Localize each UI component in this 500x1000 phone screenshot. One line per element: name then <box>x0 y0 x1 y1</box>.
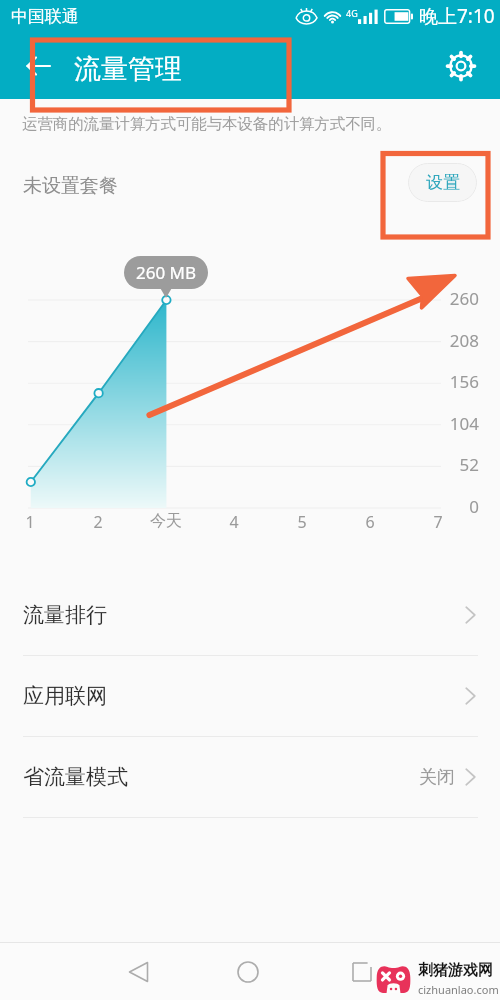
staticText: 6 <box>350 511 390 533</box>
staticText: 4 <box>214 511 254 533</box>
staticText: 260 MB <box>136 261 197 284</box>
button[interactable]: 应用联网 <box>0 656 500 736</box>
staticText: 未设置套餐 <box>23 174 118 198</box>
staticText: 应用联网 <box>23 683 107 709</box>
staticText: cizhuanlao.com <box>418 982 499 997</box>
button[interactable]: 省流量模式 <box>0 737 500 817</box>
button[interactable]: 流量排行 <box>0 575 500 655</box>
staticText: 今天 <box>146 511 186 531</box>
staticText: 中国联通 <box>11 6 79 27</box>
button[interactable]: Home <box>228 952 268 992</box>
staticText: 156 <box>429 370 479 393</box>
staticText: 208 <box>429 329 479 352</box>
staticText: 7 <box>418 511 458 533</box>
staticText: 2 <box>78 511 118 533</box>
button[interactable]: Back <box>118 952 158 992</box>
staticText: 关闭 <box>419 766 455 789</box>
staticText: 流量排行 <box>23 602 107 628</box>
staticText: 流量管理 <box>74 52 182 86</box>
button[interactable]: Recents <box>342 952 382 992</box>
staticText: 5 <box>282 511 322 533</box>
staticText: 104 <box>429 412 479 435</box>
button[interactable]: Back <box>14 44 62 88</box>
staticText: 省流量模式 <box>23 764 128 790</box>
staticText: 晚上7:10 <box>419 3 495 29</box>
staticText: 0 <box>429 495 479 518</box>
staticText: 52 <box>429 453 479 476</box>
button[interactable]: Settings <box>441 46 481 86</box>
staticText: 刺猪游戏网 <box>418 961 493 980</box>
staticText: 4G <box>346 7 358 19</box>
button[interactable]: 设置 <box>408 163 477 202</box>
staticText: 1 <box>10 511 50 533</box>
staticText: 设置 <box>426 172 460 193</box>
staticText: 260 <box>429 287 479 310</box>
staticText: 运营商的流量计算方式可能与本设备的计算方式不同。 <box>22 114 392 133</box>
